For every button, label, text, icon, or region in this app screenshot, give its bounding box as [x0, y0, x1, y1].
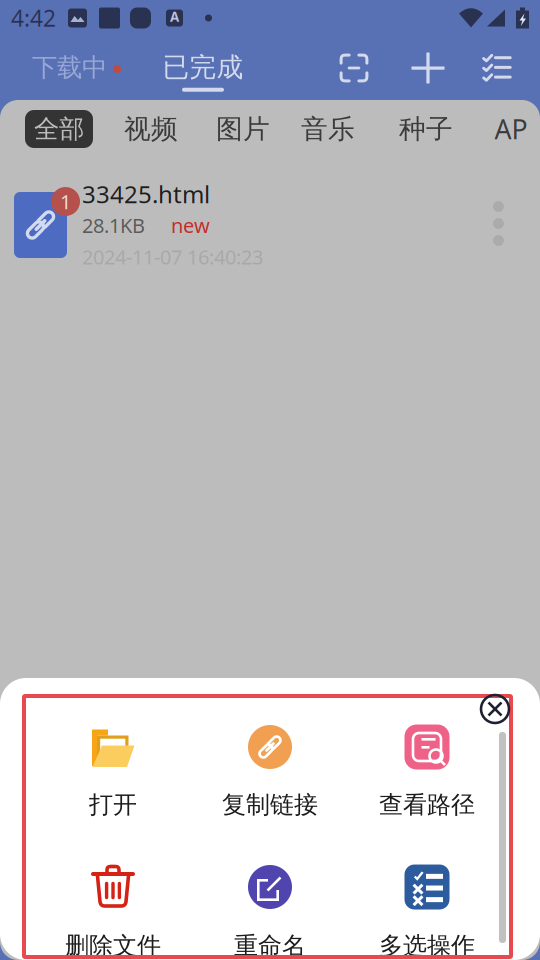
button[interactable]: Scan	[327, 37, 381, 99]
button[interactable]: 已完成	[164, 36, 242, 100]
staticText: 已完成	[162, 51, 243, 84]
button[interactable]: Add download	[401, 37, 455, 99]
button[interactable]: 打开	[34, 678, 191, 818]
button[interactable]: 1	[0, 158, 540, 288]
button[interactable]: AP	[489, 107, 533, 151]
button[interactable]: 全部	[25, 110, 93, 148]
button[interactable]: 种子	[396, 107, 456, 151]
button[interactable]: 图片	[213, 107, 273, 151]
button[interactable]: 复制链接	[191, 678, 348, 818]
staticText: 28.1KB	[82, 212, 145, 238]
staticText: A	[170, 8, 179, 25]
button[interactable]: 视频	[121, 107, 181, 151]
staticText: 33425.html	[82, 178, 210, 210]
button[interactable]: 下载中	[32, 36, 120, 100]
staticText: 打开	[89, 790, 137, 819]
staticText: AP	[494, 111, 527, 147]
staticText: 复制链接	[222, 790, 318, 819]
staticText: 图片	[216, 113, 270, 145]
staticText: 音乐	[301, 113, 355, 145]
staticText: 全部	[34, 113, 84, 144]
button[interactable]: 多选操作	[348, 818, 505, 958]
staticText: 视频	[124, 113, 178, 145]
button[interactable]: Select items	[470, 37, 524, 99]
staticText: 重命名	[234, 931, 306, 960]
button[interactable]: 删除文件	[34, 818, 191, 958]
staticText: 多选操作	[379, 931, 475, 960]
button[interactable]: Close	[477, 691, 513, 727]
staticText: new	[171, 212, 210, 238]
staticText: 查看路径	[379, 790, 475, 819]
button[interactable]: 重命名	[191, 818, 348, 958]
staticText: 4:42	[11, 3, 56, 33]
staticText: 2024-11-07 16:40:23	[82, 243, 263, 270]
staticText: 删除文件	[65, 931, 161, 960]
staticText: 种子	[399, 113, 453, 145]
staticText: 1	[60, 188, 71, 215]
button[interactable]: 音乐	[298, 107, 358, 151]
staticText: 下载中	[32, 52, 107, 83]
button[interactable]: 查看路径	[348, 678, 505, 818]
